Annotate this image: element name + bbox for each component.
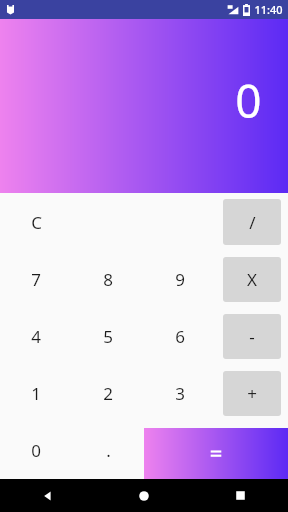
staticText: -: [249, 325, 255, 348]
staticText: 0: [31, 439, 41, 462]
staticText: 3: [175, 382, 185, 405]
staticText: 9: [175, 268, 185, 291]
staticText: .: [106, 439, 111, 462]
button[interactable]: .: [72, 422, 144, 479]
button[interactable]: 0: [0, 422, 72, 479]
button[interactable]: 5: [72, 308, 144, 365]
button[interactable]: 3: [144, 365, 216, 422]
button[interactable]: X: [223, 257, 281, 302]
button[interactable]: 4: [0, 308, 72, 365]
button[interactable]: -: [223, 314, 281, 359]
button[interactable]: Recent apps: [192, 479, 288, 512]
button[interactable]: 9: [144, 251, 216, 308]
staticText: 2: [103, 382, 113, 405]
staticText: 11:40: [254, 2, 283, 17]
staticText: 1: [31, 382, 41, 405]
button[interactable]: Back: [0, 479, 96, 512]
button[interactable]: /: [223, 199, 281, 245]
button[interactable]: [144, 428, 288, 479]
button[interactable]: 7: [0, 251, 72, 308]
button[interactable]: Home: [96, 479, 192, 512]
staticText: X: [247, 268, 257, 291]
button[interactable]: 6: [144, 308, 216, 365]
staticText: 6: [175, 325, 185, 348]
staticText: 7: [31, 268, 41, 291]
button[interactable]: 2: [72, 365, 144, 422]
staticText: C: [31, 211, 42, 234]
button[interactable]: C: [0, 193, 72, 251]
button[interactable]: 1: [0, 365, 72, 422]
staticText: 0: [235, 69, 262, 132]
staticText: 5: [103, 325, 113, 348]
button[interactable]: 8: [72, 251, 144, 308]
staticText: 4: [31, 325, 41, 348]
staticText: /: [249, 211, 256, 234]
button[interactable]: +: [223, 371, 281, 416]
staticText: +: [247, 382, 257, 405]
staticText: 8: [103, 268, 113, 291]
